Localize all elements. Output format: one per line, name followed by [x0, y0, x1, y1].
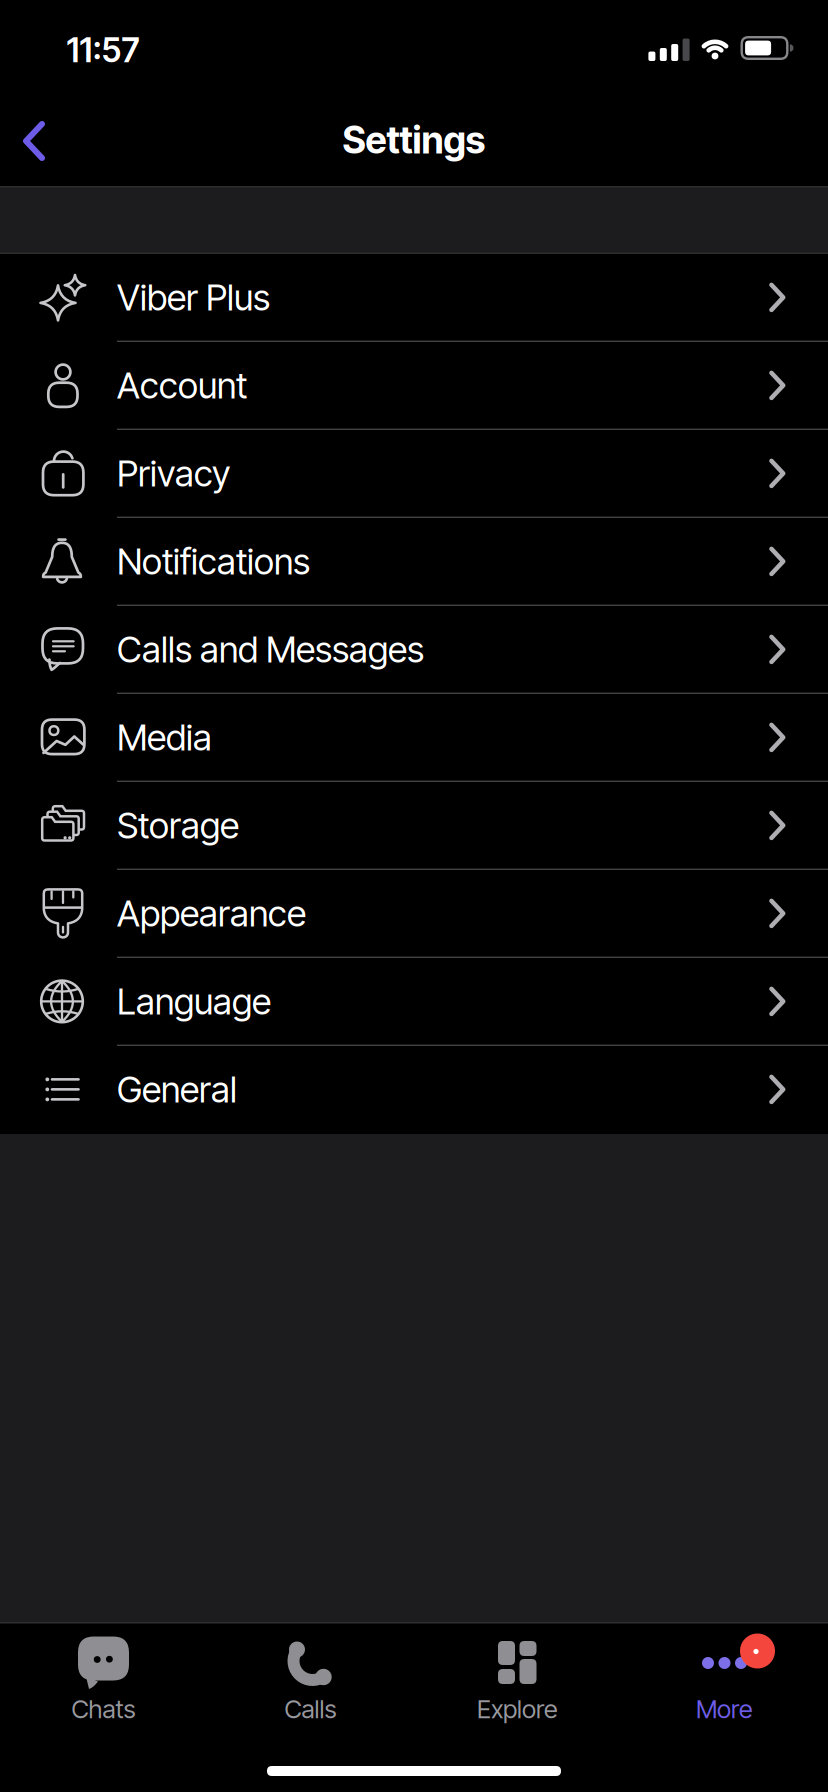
button[interactable]: Privacy: [0, 430, 828, 517]
button[interactable]: Back: [22, 120, 46, 162]
staticText: Appearance: [117, 892, 306, 935]
staticText: Privacy: [117, 452, 230, 495]
staticText: Storage: [117, 804, 239, 847]
staticText: Account: [117, 364, 247, 407]
staticText: Chats: [71, 1694, 135, 1724]
button[interactable]: Calls and Messages: [0, 606, 828, 693]
staticText: Settings: [342, 118, 485, 162]
staticText: 11:57: [66, 30, 139, 70]
button[interactable]: Viber Plus: [0, 254, 828, 341]
staticText: Language: [117, 980, 271, 1023]
staticText: Notifications: [117, 540, 310, 583]
button[interactable]: Appearance: [0, 870, 828, 957]
button[interactable]: General: [0, 1046, 828, 1133]
staticText: Media: [117, 716, 212, 759]
button[interactable]: Chats: [0, 1622, 207, 1792]
button[interactable]: Calls: [207, 1622, 414, 1792]
button[interactable]: Storage: [0, 782, 828, 869]
staticText: General: [117, 1068, 237, 1111]
staticText: More: [696, 1694, 753, 1724]
button[interactable]: Account: [0, 342, 828, 429]
button[interactable]: Media: [0, 694, 828, 781]
button[interactable]: Explore: [414, 1622, 621, 1792]
button[interactable]: More: [621, 1622, 828, 1792]
staticText: Explore: [477, 1694, 558, 1724]
staticText: Calls: [284, 1694, 336, 1724]
staticText: Calls and Messages: [117, 628, 424, 671]
button[interactable]: Language: [0, 958, 828, 1045]
staticText: Viber Plus: [117, 276, 270, 319]
button[interactable]: Notifications: [0, 518, 828, 605]
